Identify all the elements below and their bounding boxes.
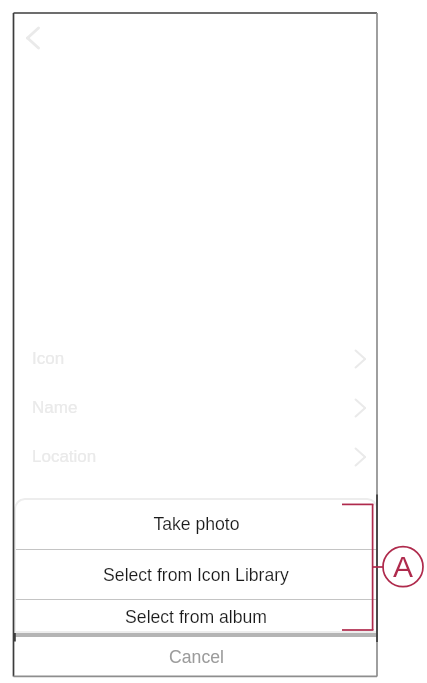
staticText: Location	[32, 447, 97, 466]
staticText: Cancel	[169, 647, 224, 667]
staticText: Select from album	[125, 607, 267, 627]
button[interactable]: Select from Icon Library	[14, 550, 378, 599]
staticText: Select from Icon Library	[103, 565, 289, 585]
staticText: A	[393, 550, 414, 584]
staticText: Name	[32, 398, 78, 417]
button[interactable]: Select from album	[14, 600, 378, 633]
button[interactable]: Name	[14, 383, 378, 432]
staticText: Icon	[32, 349, 65, 368]
button[interactable]: Icon	[14, 334, 378, 383]
button[interactable]: Take photo	[14, 498, 378, 549]
button[interactable]: Location	[14, 432, 378, 481]
staticText: Take photo	[153, 514, 240, 534]
button[interactable]: Back	[20, 15, 60, 55]
button[interactable]: Cancel	[14, 637, 378, 677]
